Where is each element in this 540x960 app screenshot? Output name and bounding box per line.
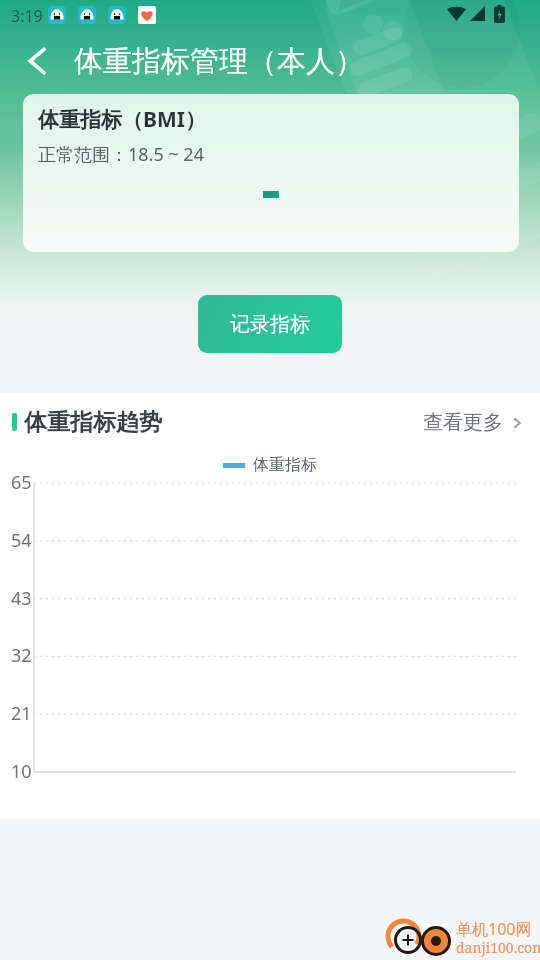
staticText: 32 [11,643,32,665]
staticText: 正常范围：18.5 ~ 24 [38,142,204,167]
button[interactable]: Back [10,35,66,87]
staticText: 体重指标 [253,455,317,475]
staticText: 查看更多 [423,410,503,435]
staticText: 54 [11,528,32,550]
staticText: 10 [11,759,32,781]
button[interactable]: 查看更多 [423,410,524,435]
staticText: 记录指标 [230,312,310,337]
staticText: 65 [11,470,32,492]
staticText: danji100.com [456,938,540,957]
staticText: 3:19 [11,5,43,27]
button[interactable]: 记录指标 [198,295,342,353]
staticText: 体重指标管理（本人） [74,43,364,80]
staticText: 体重指标（BMI） [38,105,206,134]
staticText: 单机100网 [456,918,532,940]
staticText: 21 [11,701,32,723]
button[interactable]: 体重指标（BMI） [23,94,519,252]
staticText: 43 [11,586,32,608]
staticText: 体重指标趋势 [24,408,162,437]
